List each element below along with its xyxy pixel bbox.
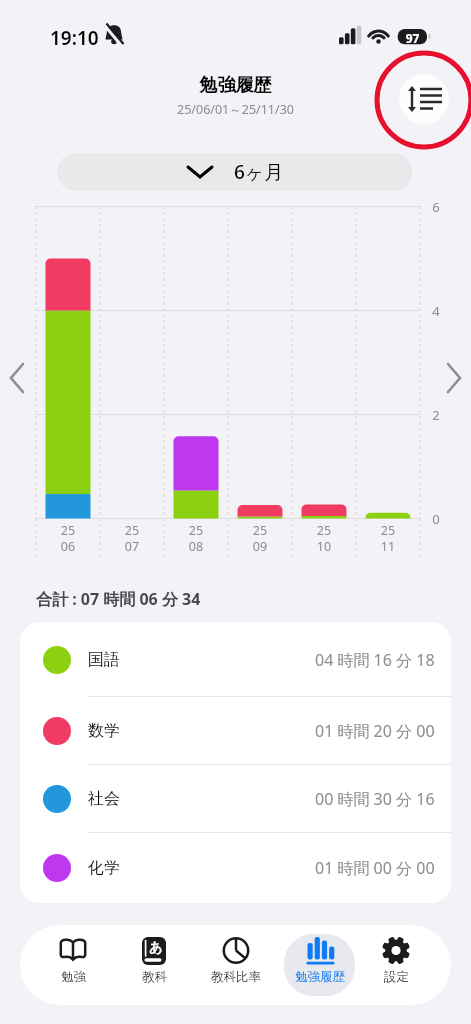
staticText: 25 xyxy=(368,522,408,539)
button[interactable]: 設定 xyxy=(366,936,426,998)
staticText: 教科 xyxy=(142,969,167,985)
staticText: 08 xyxy=(176,538,216,555)
button[interactable]: 6ヶ月 xyxy=(57,153,412,191)
staticText: 勉強 xyxy=(61,969,86,985)
staticText: 国語 xyxy=(88,650,120,670)
staticText: あ xyxy=(149,939,163,955)
staticText: 教科比率 xyxy=(211,969,261,985)
staticText: 社会 xyxy=(88,789,120,809)
button[interactable]: 勉強 xyxy=(43,936,103,998)
staticText: 01 時間 20 分 00 xyxy=(315,720,435,742)
staticText: 2 xyxy=(426,406,446,424)
staticText: 11 xyxy=(368,538,408,555)
button[interactable]: 化学 xyxy=(20,833,451,903)
staticText: 00 時間 30 分 16 xyxy=(315,788,435,810)
staticText: 25 xyxy=(240,522,280,539)
staticText: 数学 xyxy=(88,721,120,741)
button[interactable] xyxy=(439,358,467,398)
staticText: 25 xyxy=(176,522,216,539)
staticText: 01 時間 00 分 00 xyxy=(315,857,435,879)
staticText: 06 xyxy=(48,538,88,555)
staticText: 25 xyxy=(48,522,88,539)
staticText: 25/06/01～25/11/30 xyxy=(0,101,471,118)
staticText: 6ヶ月 xyxy=(234,159,284,185)
staticText: 07 xyxy=(112,538,152,555)
staticText: 4 xyxy=(426,302,446,320)
button[interactable]: 社会 xyxy=(20,765,451,833)
staticText: 09 xyxy=(240,538,280,555)
button[interactable]: 数学 xyxy=(20,697,451,765)
staticText: 25 xyxy=(304,522,344,539)
button[interactable]: あ xyxy=(124,936,184,998)
staticText: 合計 : 07 時間 06 分 34 xyxy=(36,588,436,610)
staticText: 化学 xyxy=(88,858,120,878)
button[interactable]: 教科比率 xyxy=(200,936,272,998)
staticText: 0 xyxy=(426,510,446,528)
staticText: 25 xyxy=(112,522,152,539)
button[interactable]: 勉強履歴 xyxy=(284,936,356,998)
staticText: 設定 xyxy=(384,969,409,985)
staticText: 97 xyxy=(398,30,427,46)
button[interactable] xyxy=(4,358,32,398)
staticText: 10 xyxy=(304,538,344,555)
staticText: 勉強履歴 xyxy=(0,74,471,97)
button[interactable]: 国語 xyxy=(20,622,451,697)
staticText: 04 時間 16 分 18 xyxy=(315,649,435,671)
staticText: 6 xyxy=(426,198,446,216)
staticText: 勉強履歴 xyxy=(295,969,345,985)
staticText: 19:10 xyxy=(50,25,130,51)
button[interactable] xyxy=(399,74,449,124)
